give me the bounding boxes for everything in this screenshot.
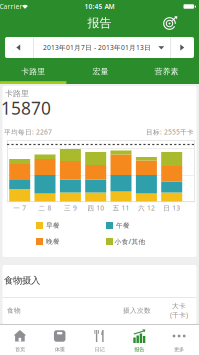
button[interactable]: 更多 — [159, 324, 199, 355]
staticText: 报告 — [134, 346, 144, 353]
staticText: 晚餐 — [46, 237, 60, 246]
button[interactable]: 营养素 — [133, 62, 199, 84]
button[interactable]: 体重 — [40, 324, 80, 355]
staticText: (千卡) — [170, 311, 188, 319]
staticText: 大卡 — [172, 302, 186, 310]
staticText: 日 13 — [163, 204, 180, 212]
staticText: 一 7 — [13, 204, 26, 212]
staticText: 首页 — [15, 346, 25, 353]
staticText: 五 11 — [112, 204, 129, 212]
staticText: 摄入次数 — [123, 306, 151, 315]
staticText: 日记 — [94, 346, 104, 353]
staticText: 10:45 AM — [84, 2, 114, 11]
staticText: 目标: 2555千卡 — [146, 128, 194, 136]
staticText: 更多 — [174, 346, 184, 353]
button[interactable] — [160, 12, 182, 34]
button[interactable]: 日记 — [80, 324, 119, 355]
staticText: 食物摄入 — [4, 275, 40, 286]
staticText: 2013年01月7日 - 2013年01月13日 — [43, 43, 151, 52]
staticText: 宏量 — [92, 67, 108, 76]
button[interactable]: 卡路里 — [0, 62, 66, 84]
staticText: 平均每日: 2267 — [4, 128, 52, 136]
staticText: 体重 — [55, 346, 65, 353]
staticText: 营养素 — [155, 67, 179, 76]
staticText: 15870 — [1, 96, 51, 119]
button[interactable]: 首页 — [0, 324, 40, 355]
staticText: 报告 — [87, 16, 111, 30]
button[interactable]: 报告 — [119, 324, 159, 355]
button[interactable] — [168, 37, 195, 58]
staticText: 小食/其他 — [114, 237, 145, 246]
button[interactable] — [5, 37, 32, 58]
staticText: 二 8 — [38, 204, 51, 212]
staticText: 午餐 — [116, 221, 130, 230]
staticText: 三 9 — [64, 204, 77, 212]
staticText: 六 12 — [138, 204, 155, 212]
staticText: 四 10 — [87, 204, 104, 212]
staticText: 卡路里 — [21, 67, 45, 76]
staticText: 食物 — [7, 306, 21, 315]
staticText: Carrier — [0, 2, 22, 11]
staticText: 卡路里 — [5, 89, 29, 98]
button[interactable] — [5, 37, 194, 58]
staticText: 早餐 — [46, 221, 60, 230]
button[interactable]: 宏量 — [67, 62, 134, 84]
